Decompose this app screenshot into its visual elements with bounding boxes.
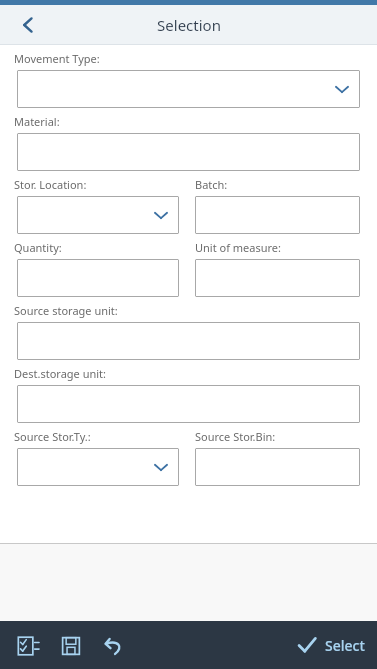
staticText: Dest.storage unit: — [14, 366, 106, 381]
staticText: Unit of measure: — [195, 240, 282, 255]
button[interactable] — [17, 70, 360, 108]
staticText: Material: — [14, 114, 60, 129]
button[interactable] — [17, 133, 360, 171]
staticText: Stor. Location: — [14, 177, 87, 192]
button[interactable] — [17, 322, 360, 360]
button[interactable]: Checklist — [6, 624, 49, 667]
staticText: Select — [325, 636, 365, 655]
button[interactable] — [17, 385, 360, 423]
button[interactable] — [17, 259, 179, 297]
staticText: Quantity: — [14, 240, 62, 255]
staticText: Batch: — [195, 177, 228, 192]
button[interactable] — [17, 196, 179, 234]
button[interactable]: Undo — [92, 624, 135, 667]
staticText: Source storage unit: — [14, 303, 118, 318]
button[interactable] — [195, 259, 360, 297]
button[interactable]: Save — [49, 624, 92, 667]
button[interactable] — [195, 448, 360, 486]
button[interactable]: Back — [8, 5, 48, 44]
staticText: Source Stor.Ty.: — [14, 429, 91, 444]
staticText: Movement Type: — [14, 51, 100, 66]
button[interactable] — [195, 196, 360, 234]
button[interactable]: Select — [296, 634, 365, 656]
staticText: Source Stor.Bin: — [195, 429, 276, 444]
button[interactable] — [17, 448, 179, 486]
staticText: Selection — [157, 15, 221, 35]
